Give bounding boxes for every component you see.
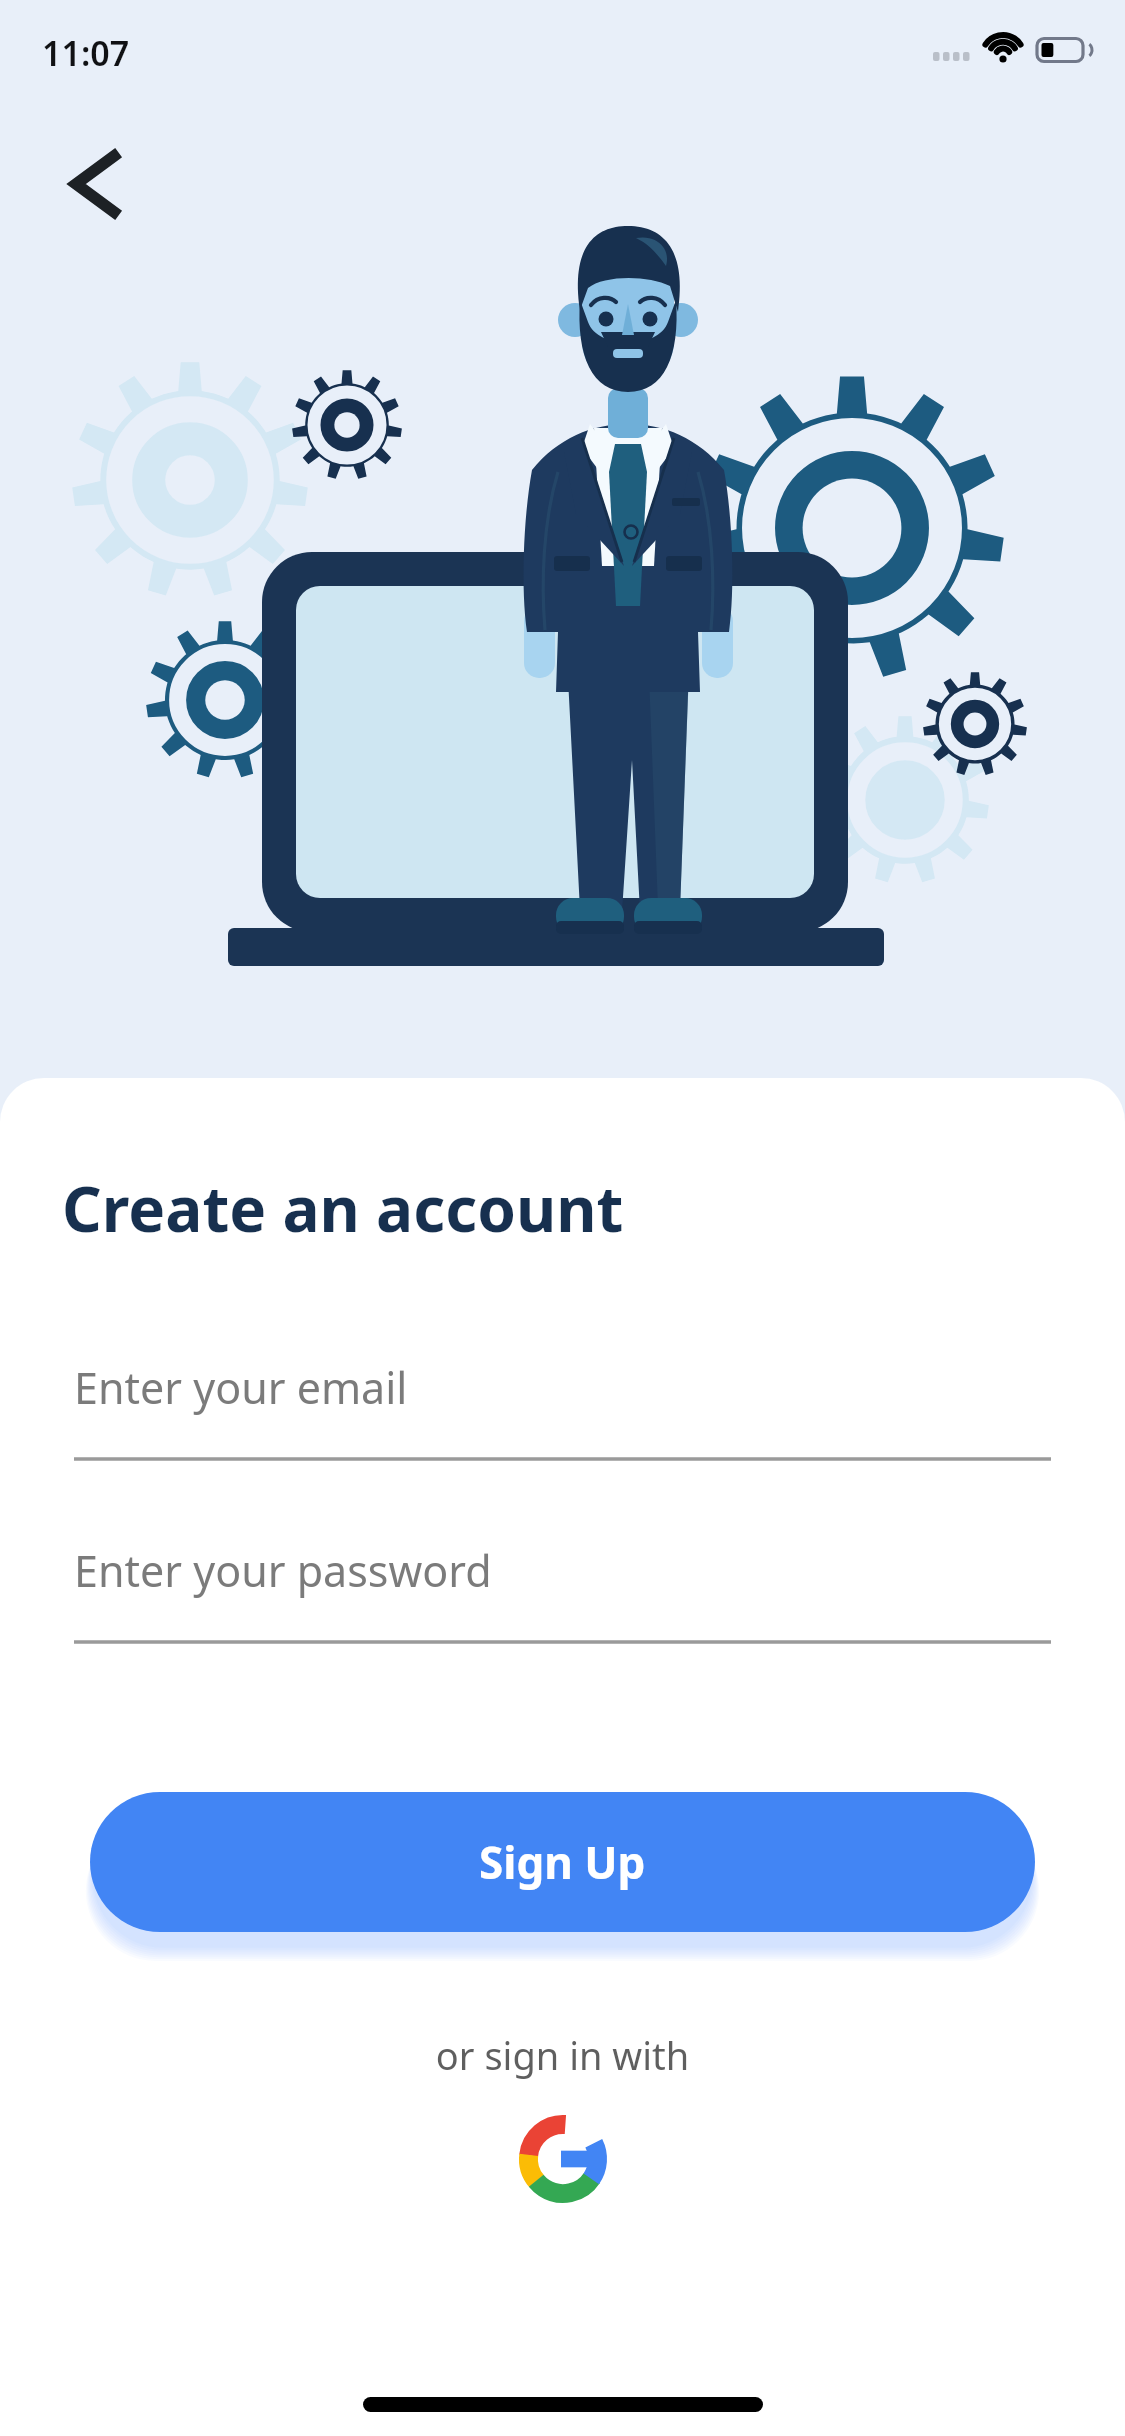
button[interactable]: Enter your email [74,1358,1051,1461]
staticText: Sign Up [479,1832,646,1892]
button[interactable]: Sign Up [90,1792,1035,1932]
staticText: Create an account [62,1166,624,1250]
button[interactable]: Sign in with Google [513,2109,613,2209]
button[interactable]: Enter your password [74,1541,1051,1644]
button[interactable]: Back [32,132,144,244]
staticText: Enter your password [74,1541,492,1600]
staticText: 11:07 [42,30,130,76]
staticText: Enter your email [74,1358,408,1417]
staticText: or sign in with [0,2029,1125,2081]
